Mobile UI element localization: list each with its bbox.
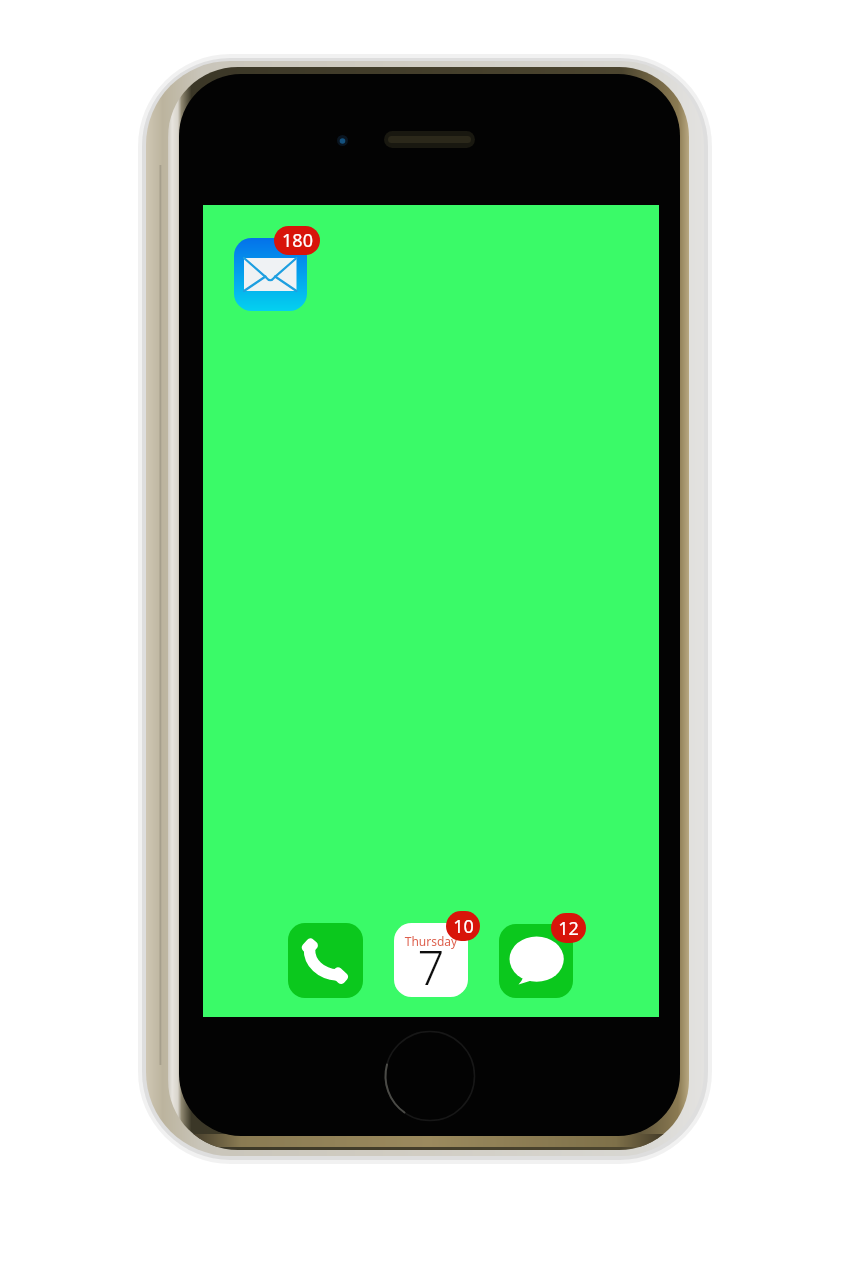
- button[interactable]: Messages: [499, 924, 573, 998]
- staticText: 12: [558, 916, 579, 941]
- staticText: Thursday: [394, 933, 468, 997]
- button[interactable]: Mail: [234, 238, 307, 311]
- staticText: 7: [394, 935, 468, 997]
- button[interactable]: Phone: [288, 923, 363, 998]
- button[interactable]: Calendar: [394, 923, 468, 997]
- staticText: 180: [282, 228, 313, 253]
- staticText: 10: [453, 914, 474, 939]
